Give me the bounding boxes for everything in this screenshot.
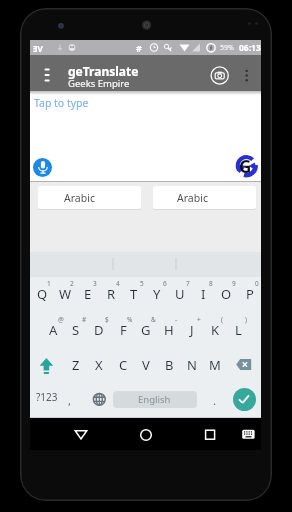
staticText: E — [84, 285, 92, 303]
button[interactable] — [233, 388, 256, 411]
button[interactable]: M — [155, 351, 272, 379]
staticText: O — [221, 285, 232, 303]
button[interactable] — [38, 186, 141, 209]
button[interactable]: J — [132, 316, 252, 344]
staticText: Tap to type — [34, 96, 89, 110]
button[interactable]: F — [63, 316, 183, 344]
staticText: 7 — [186, 279, 190, 288]
staticText: , — [68, 393, 71, 408]
button[interactable] — [153, 186, 256, 209]
staticText: # — [136, 42, 142, 54]
button[interactable]: O — [166, 280, 272, 308]
staticText: 9 — [232, 279, 236, 288]
button[interactable]: E — [28, 280, 148, 308]
button[interactable]: R — [51, 280, 171, 308]
staticText: 4 — [116, 279, 120, 288]
staticText: 59% — [220, 43, 234, 53]
button[interactable]: Z — [20, 351, 136, 379]
staticText: B — [165, 356, 174, 374]
staticText: & — [151, 315, 156, 324]
staticText: 0 — [255, 279, 259, 288]
button[interactable] — [30, 55, 261, 91]
staticText: X — [95, 356, 103, 374]
staticText: P — [246, 285, 254, 303]
button[interactable]: B — [109, 351, 229, 379]
staticText: H — [164, 321, 174, 339]
staticText: T — [130, 285, 138, 303]
button[interactable]: T — [74, 280, 194, 308]
button[interactable]: X — [39, 351, 159, 379]
button[interactable]: Y — [97, 280, 217, 308]
button[interactable]: U — [120, 280, 240, 308]
staticText: L — [235, 321, 242, 339]
staticText: G — [141, 321, 151, 339]
button[interactable]: L — [178, 316, 272, 344]
staticText: V — [142, 356, 150, 374]
staticText: R — [107, 285, 116, 303]
staticText: Z — [72, 356, 80, 374]
staticText: G — [239, 155, 252, 178]
button[interactable] — [113, 391, 197, 408]
button[interactable] — [33, 158, 52, 177]
button[interactable]: D — [39, 316, 159, 344]
staticText: $ — [105, 315, 109, 324]
staticText: ƎV — [33, 43, 43, 54]
button[interactable]: H — [109, 316, 229, 344]
staticText: Y — [153, 285, 161, 303]
staticText: 1 — [47, 279, 51, 288]
staticText: 06:13 — [239, 42, 261, 54]
staticText: K — [211, 321, 220, 339]
staticText: % — [127, 315, 133, 324]
staticText: D — [94, 321, 104, 339]
staticText: J — [190, 321, 194, 339]
staticText: Q — [37, 285, 48, 303]
button[interactable]: P — [190, 280, 272, 308]
staticText: . — [213, 393, 216, 408]
staticText: Geeks Empire — [68, 77, 130, 90]
staticText: C — [119, 356, 128, 374]
staticText: @ — [58, 315, 64, 324]
staticText: ) — [245, 315, 247, 324]
staticText: 2 — [70, 279, 74, 288]
staticText: S — [72, 321, 80, 339]
button[interactable]: K — [155, 316, 272, 344]
button[interactable]: N — [132, 351, 252, 379]
staticText: F — [120, 321, 127, 339]
staticText: ( — [221, 315, 223, 324]
staticText: 3 — [93, 279, 97, 288]
button[interactable]: I — [143, 280, 263, 308]
staticText: 6 — [163, 279, 167, 288]
staticText: N — [187, 356, 197, 374]
button[interactable]: C — [63, 351, 183, 379]
staticText: U — [175, 285, 185, 303]
staticText: + — [197, 315, 201, 324]
staticText: geTranslate — [68, 63, 139, 79]
staticText: 8 — [209, 279, 213, 288]
staticText: Arabic — [177, 191, 208, 205]
button[interactable]: G — [86, 316, 206, 344]
staticText: # — [82, 315, 87, 324]
button[interactable]: S — [20, 316, 136, 344]
button[interactable]: ?123 — [20, 383, 107, 411]
staticText: I — [201, 285, 206, 303]
staticText: English — [138, 393, 171, 406]
staticText: 5 — [140, 279, 144, 288]
staticText: ?123 — [36, 390, 58, 404]
staticText: - — [175, 315, 178, 324]
staticText: Arabic — [64, 191, 95, 205]
button[interactable]: V — [86, 351, 206, 379]
staticText: M — [209, 356, 221, 374]
button[interactable]: A — [20, 316, 113, 344]
button[interactable]: Q — [20, 280, 102, 308]
staticText: W — [59, 285, 72, 303]
staticText: A — [49, 321, 58, 339]
button[interactable]: W — [20, 280, 125, 308]
